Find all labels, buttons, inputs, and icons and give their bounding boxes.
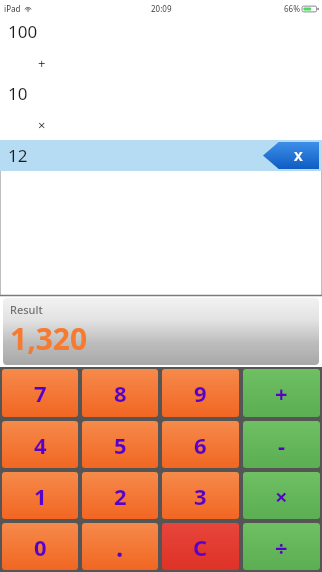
staticText: 5 [114,430,127,460]
staticText: 4 [34,430,47,460]
staticText: 20:09 [151,3,172,14]
staticText: 100 [8,20,38,43]
button[interactable]: 7 [2,369,78,417]
button[interactable]: × [0,109,322,140]
staticText: + [38,54,46,72]
staticText: 1,320 [10,318,88,359]
button[interactable]: 0 [2,523,78,570]
button[interactable]: 5 [82,421,158,468]
button[interactable]: 9 [162,369,239,417]
button[interactable]: . [82,523,158,570]
staticText: Result [10,302,43,317]
staticText: iPad [4,3,21,14]
button[interactable]: + [243,369,320,417]
staticText: 3 [194,481,207,511]
staticText: 7 [34,378,47,408]
button[interactable]: Result [3,298,319,365]
staticText: 8 [114,378,127,408]
button[interactable]: 6 [162,421,239,468]
staticText: × [275,481,288,511]
button[interactable]: + [0,47,322,78]
staticText: 9 [194,378,207,408]
staticText: 10 [8,82,28,105]
button[interactable]: Delete entry [263,142,319,169]
button[interactable]: × [243,472,320,519]
button[interactable]: 100 [0,16,322,47]
staticText: 66% [284,3,300,14]
button[interactable]: 10 [0,78,322,109]
staticText: 2 [114,481,127,511]
staticText: 1 [34,481,47,511]
staticText: ÷ [275,532,288,562]
staticText: X [294,147,303,165]
staticText: C [193,532,208,562]
button[interactable]: - [243,421,320,468]
staticText: - [278,430,286,460]
staticText: × [38,116,46,134]
staticText: 0 [34,532,47,562]
button[interactable]: 2 [82,472,158,519]
staticText: 6 [194,430,207,460]
button[interactable]: 4 [2,421,78,468]
button[interactable]: ÷ [243,523,320,570]
button[interactable]: 8 [82,369,158,417]
button[interactable]: C [162,523,239,570]
staticText: 12 [8,144,28,167]
staticText: + [275,378,288,408]
button[interactable]: 3 [162,472,239,519]
button[interactable]: 12 [0,140,322,171]
staticText: . [116,529,124,564]
button[interactable]: 1 [2,472,78,519]
